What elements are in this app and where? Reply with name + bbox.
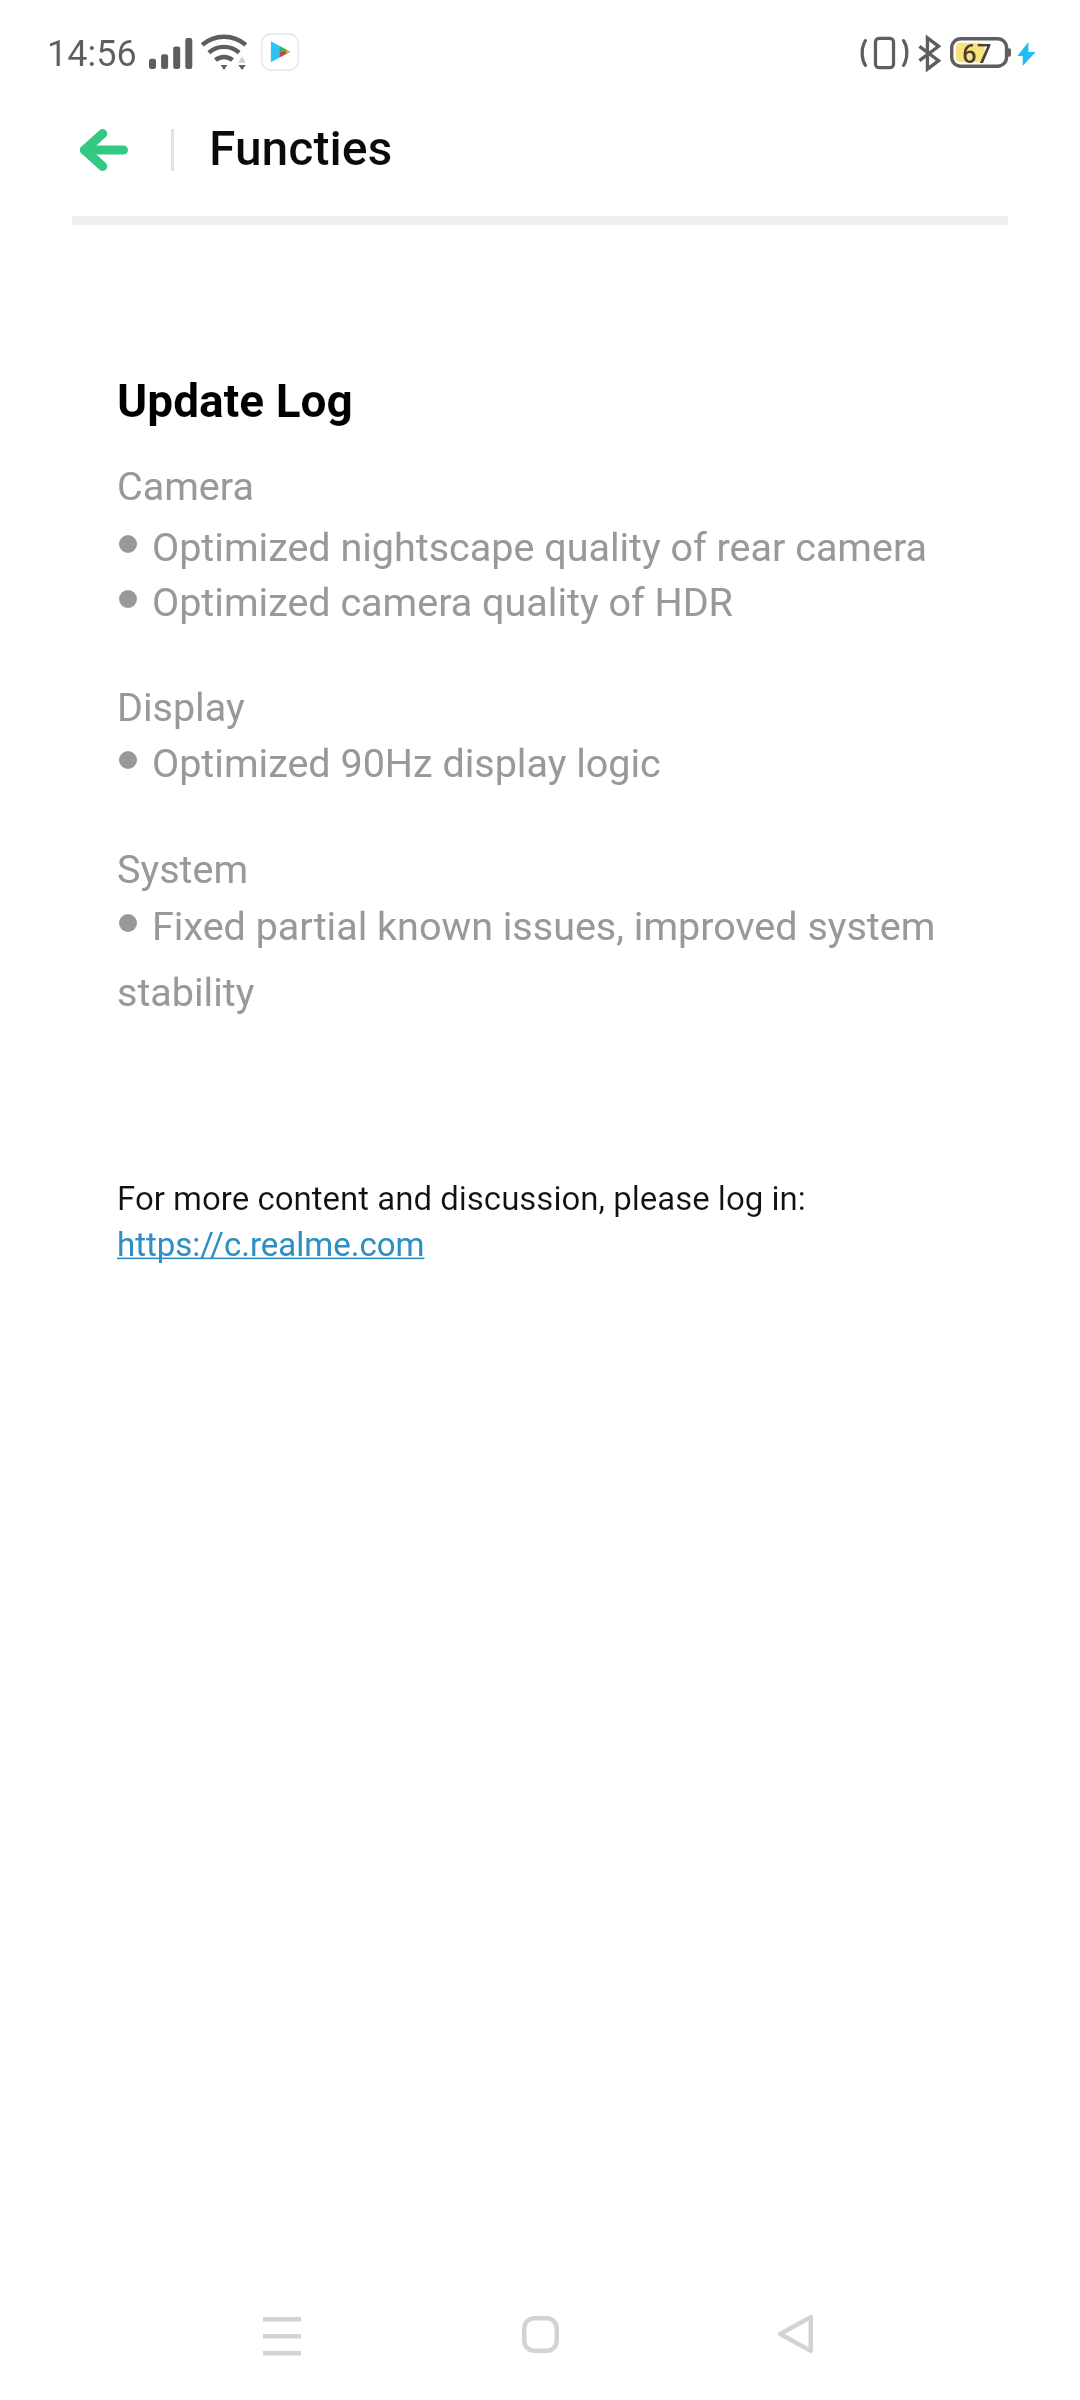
staticText: stability [117, 969, 255, 1015]
staticText: Display [117, 684, 245, 730]
staticText: 14:56 [47, 33, 137, 75]
staticText: System [117, 846, 249, 892]
button[interactable]: Back [729, 2268, 861, 2400]
button[interactable]: Home [474, 2268, 606, 2400]
staticText: Update Log [117, 374, 353, 428]
button[interactable]: Back [58, 111, 150, 189]
staticText: Optimized camera quality of HDR [152, 579, 733, 625]
staticText: Optimized nightscape quality of rear cam… [152, 524, 928, 570]
staticText: For more content and discussion, please … [117, 1179, 806, 1218]
staticText: Fixed partial known issues, improved sys… [152, 903, 936, 949]
staticText: 67 [962, 39, 992, 69]
staticText: Camera [117, 463, 254, 509]
button[interactable]: https://c.realme.com [117, 1225, 425, 1264]
staticText: Optimized 90Hz display logic [152, 740, 661, 786]
staticText: Functies [209, 120, 393, 176]
button[interactable]: Recent apps [216, 2268, 348, 2400]
